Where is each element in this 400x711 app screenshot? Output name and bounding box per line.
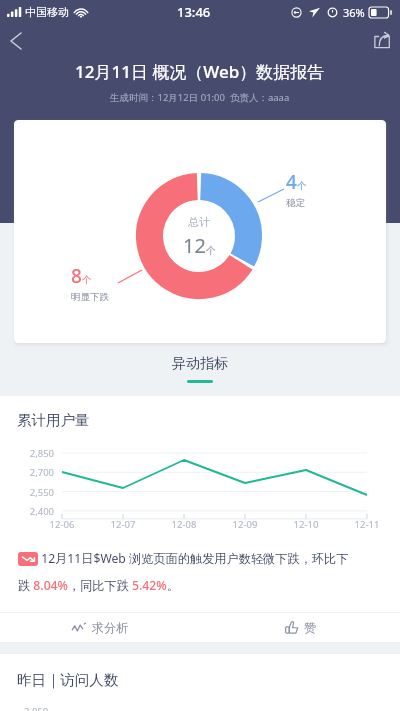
staticText: 12-09 xyxy=(228,518,262,531)
staticText: 赞 xyxy=(304,620,316,635)
staticText: 总计 xyxy=(188,215,210,229)
staticText: 昨日｜访问人数 xyxy=(17,671,119,689)
staticText: 12-06 xyxy=(45,518,79,531)
staticText: 明显下跌 xyxy=(71,291,109,303)
staticText: 中国移动 xyxy=(25,5,69,19)
staticText: 累计用户量 xyxy=(17,411,90,429)
staticText: 8 xyxy=(71,263,82,289)
staticText: 个 xyxy=(82,274,92,286)
staticText: 13:46 xyxy=(177,3,211,21)
staticText: 生成时间：12月12日 01:00 负责人：aaaa xyxy=(110,91,290,104)
button[interactable]: Back xyxy=(0,24,32,58)
staticText: 2,400 xyxy=(22,505,54,518)
staticText: 4 xyxy=(286,169,297,195)
staticText: 求分析 xyxy=(92,620,128,635)
staticText: 稳定 xyxy=(286,197,305,209)
button[interactable]: 求分析 xyxy=(0,613,200,642)
staticText: 12-07 xyxy=(106,518,140,531)
staticText: 2,050 xyxy=(24,705,49,711)
staticText: 个 xyxy=(297,180,307,192)
button[interactable]: Share xyxy=(364,24,400,58)
staticText: 12-08 xyxy=(167,518,201,531)
staticText: 12-11 xyxy=(350,518,384,531)
staticText: 个 xyxy=(206,244,216,257)
staticText: 2,550 xyxy=(22,486,54,499)
staticText: 异动指标 xyxy=(172,355,228,373)
staticText: 36% xyxy=(343,5,365,20)
staticText: 2,850 xyxy=(22,447,54,460)
button[interactable]: 异动指标 xyxy=(172,355,228,383)
staticText: 12月11日 概况（Web）数据报告 xyxy=(75,60,325,83)
button[interactable]: 赞 xyxy=(200,613,400,642)
staticText: [i] 12月11日$Web 浏览页面的触发用户数轻微下跌，环比下跌 8.04%… xyxy=(18,550,352,594)
staticText: 12 xyxy=(183,232,206,259)
staticText: 12-10 xyxy=(289,518,323,531)
staticText: 2,700 xyxy=(22,466,54,479)
